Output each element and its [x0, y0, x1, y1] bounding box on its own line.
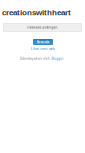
staticText: Lihat versi web — [31, 47, 55, 51]
staticText: creationswithheart — [2, 8, 71, 17]
button[interactable]: Lihat versi web — [31, 47, 55, 51]
button[interactable]: Blogger — [51, 57, 63, 60]
staticText: Blogger — [51, 57, 63, 60]
staticText: Tidak ada postingan. — [26, 26, 58, 29]
staticText: Beranda — [36, 40, 49, 44]
button[interactable]: Beranda — [33, 39, 53, 45]
staticText: Diberdayakan oleh — [20, 57, 50, 60]
